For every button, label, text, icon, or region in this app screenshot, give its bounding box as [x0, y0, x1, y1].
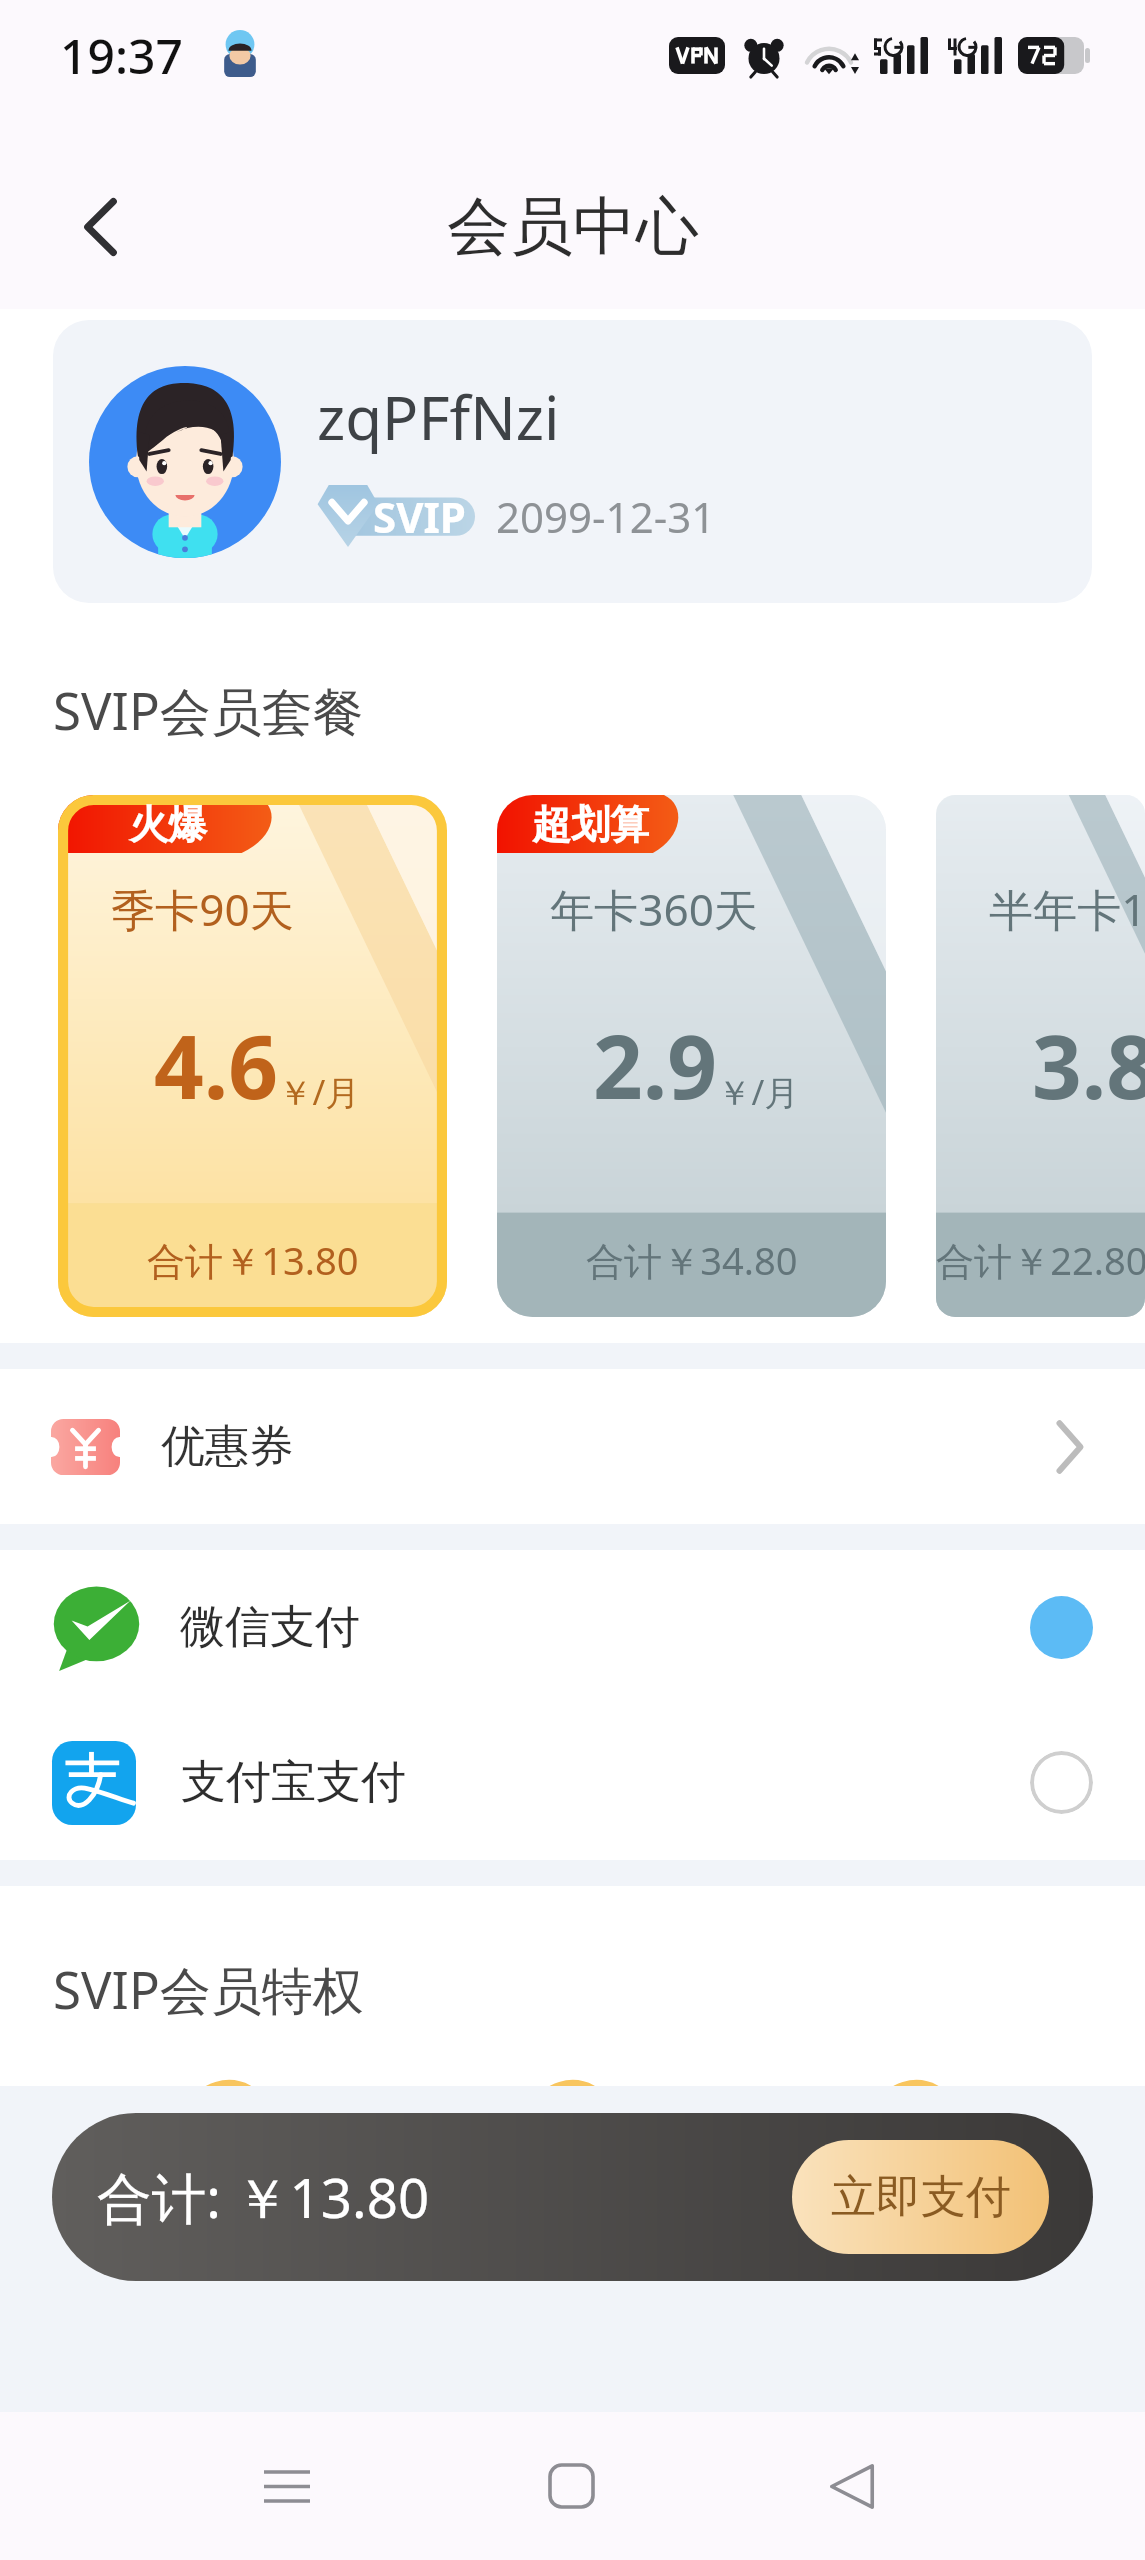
staticText: 半年卡180天	[989, 879, 1145, 939]
staticText: SVIP会员套餐	[53, 675, 364, 745]
button[interactable]: Back	[43, 170, 157, 284]
staticText: 19:37	[60, 23, 183, 88]
staticText: 季卡90天	[111, 879, 294, 939]
button[interactable]: zqPFfNzi	[53, 320, 1092, 603]
staticText: 微信支付	[180, 1599, 360, 1656]
staticText: SVIP	[373, 488, 466, 545]
staticText: 3.8	[1032, 1006, 1145, 1124]
button[interactable]: Back	[780, 2414, 924, 2558]
staticText: 合计￥34.80	[586, 1234, 798, 1286]
staticText: zqPFfNzi	[317, 376, 560, 458]
staticText: 合计￥22.80	[936, 1234, 1145, 1286]
staticText: 火爆	[129, 800, 207, 849]
staticText: 合计￥13.80	[147, 1234, 359, 1286]
staticText: ￥/月	[278, 1068, 360, 1115]
button[interactable]: 合计: ￥13.80	[52, 2113, 1093, 2281]
staticText: 2099-12-31	[496, 488, 716, 545]
button[interactable]: 立即支付	[792, 2140, 1049, 2254]
staticText: 2.9	[593, 1006, 717, 1124]
staticText: SVIP会员特权	[53, 1954, 364, 2024]
button[interactable]: 支付宝支付	[0, 1705, 1145, 1860]
staticText: ￥/月	[717, 1068, 799, 1115]
staticText: 4.6	[154, 1006, 278, 1124]
staticText: 合计: ￥13.80	[97, 2160, 430, 2235]
staticText: 优惠券	[161, 1419, 294, 1475]
button[interactable]: 超划算	[497, 795, 886, 1317]
button[interactable]: Recents	[215, 2414, 359, 2558]
staticText: 支付宝支付	[181, 1754, 406, 1811]
button[interactable]: 火爆	[58, 795, 447, 1317]
button[interactable]: Home	[499, 2414, 643, 2558]
staticText: 年卡360天	[550, 879, 758, 939]
button[interactable]: 半年卡180天	[936, 795, 1145, 1317]
staticText: 超划算	[532, 800, 649, 849]
staticText: 立即支付	[831, 2169, 1011, 2226]
button[interactable]: 微信支付	[0, 1550, 1145, 1705]
staticText: 会员中心	[447, 187, 699, 266]
button[interactable]: 优惠券	[0, 1369, 1145, 1524]
